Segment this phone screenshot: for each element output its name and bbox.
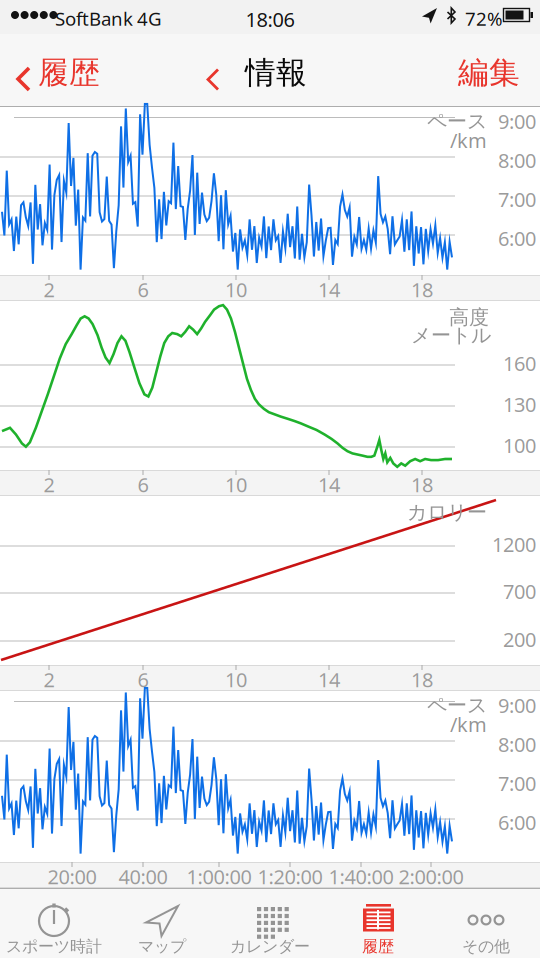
- staticText: 14: [318, 276, 340, 303]
- staticText: 情報: [245, 54, 307, 92]
- staticText: 6: [137, 276, 148, 303]
- staticText: 40:00: [118, 863, 167, 890]
- staticText: 18: [411, 666, 433, 693]
- staticText: 700: [503, 578, 536, 605]
- staticText: 18: [411, 471, 433, 498]
- staticText: 2:00:00: [398, 863, 463, 890]
- staticText: 2: [43, 666, 54, 693]
- staticText: ペース: [427, 693, 487, 718]
- staticText: 100: [503, 432, 536, 459]
- staticText: 履歴: [38, 54, 100, 92]
- staticText: 高度: [449, 305, 489, 330]
- staticText: 1:20:00: [257, 863, 322, 890]
- staticText: /km: [450, 711, 487, 738]
- staticText: 7:00: [498, 186, 536, 213]
- staticText: 9:00: [498, 108, 536, 135]
- staticText: スポーツ時計: [6, 937, 102, 956]
- staticText: 160: [503, 350, 536, 377]
- staticText: メートル: [411, 323, 491, 348]
- button[interactable]: 履歴: [324, 888, 432, 958]
- staticText: 6: [137, 666, 148, 693]
- staticText: カロリー: [407, 500, 487, 525]
- staticText: 20:00: [47, 863, 96, 890]
- staticText: 6: [137, 471, 148, 498]
- staticText: 18: [411, 276, 433, 303]
- staticText: 4G: [137, 6, 162, 31]
- staticText: /km: [450, 127, 487, 154]
- staticText: 編集: [458, 54, 520, 92]
- button[interactable]: カレンダー: [216, 888, 324, 958]
- staticText: 9:00: [498, 692, 536, 719]
- button[interactable]: 編集: [448, 34, 538, 107]
- button[interactable]: その他: [432, 888, 540, 958]
- staticText: 1200: [492, 531, 536, 558]
- button[interactable]: 履歴: [0, 34, 110, 107]
- staticText: 2: [43, 471, 54, 498]
- staticText: 10: [225, 666, 247, 693]
- button[interactable]: スポーツ時計: [0, 888, 108, 958]
- staticText: 7:00: [498, 770, 536, 797]
- staticText: 6:00: [498, 225, 536, 252]
- staticText: 1:40:00: [328, 863, 393, 890]
- staticText: 履歴: [362, 937, 394, 956]
- staticText: 1:00:00: [186, 863, 251, 890]
- staticText: 2: [43, 276, 54, 303]
- staticText: その他: [462, 937, 510, 956]
- staticText: 10: [225, 471, 247, 498]
- staticText: 8:00: [498, 731, 536, 758]
- staticText: 200: [503, 626, 536, 653]
- staticText: 72%: [465, 6, 503, 31]
- staticText: 6:00: [498, 809, 536, 836]
- staticText: 130: [503, 391, 536, 418]
- staticText: カレンダー: [230, 937, 310, 956]
- staticText: マップ: [138, 937, 186, 956]
- staticText: 10: [225, 276, 247, 303]
- button[interactable]: マップ: [108, 888, 216, 958]
- staticText: 14: [318, 471, 340, 498]
- staticText: ペース: [427, 109, 487, 134]
- staticText: 14: [318, 666, 340, 693]
- staticText: SoftBank: [55, 6, 133, 31]
- staticText: 18:06: [245, 6, 294, 33]
- staticText: 8:00: [498, 147, 536, 174]
